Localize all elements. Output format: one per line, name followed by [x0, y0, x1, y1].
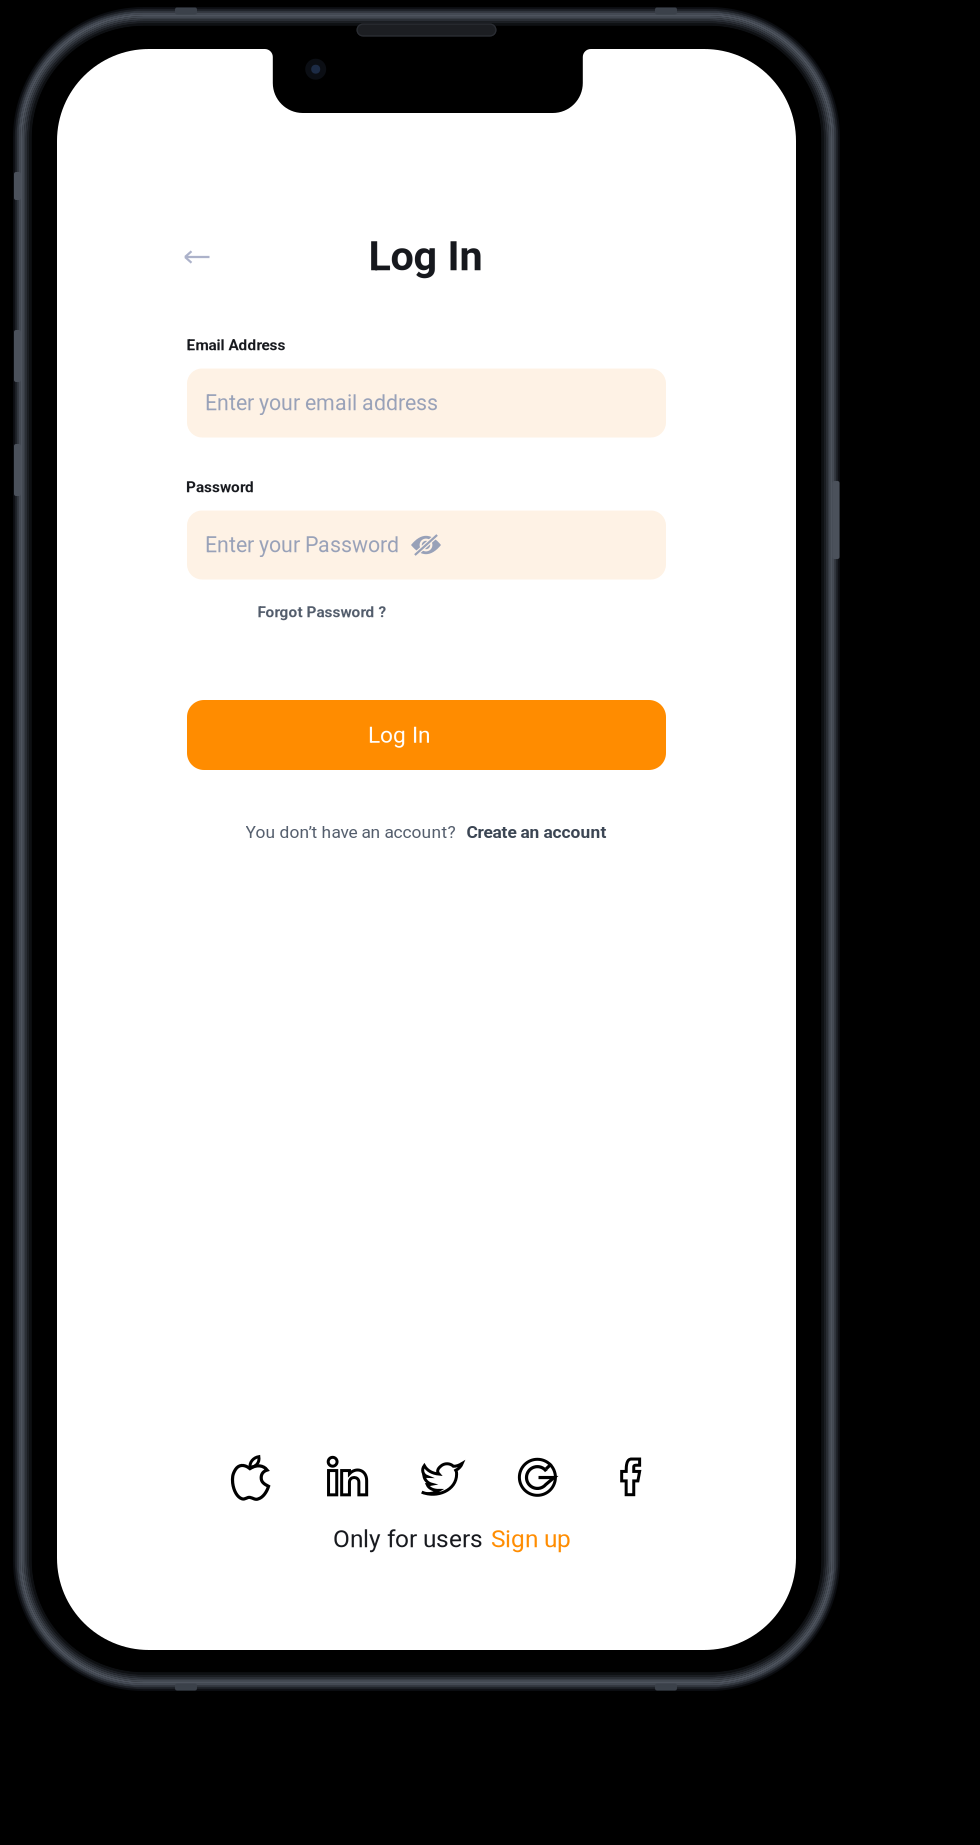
button[interactable]: Sign in with LinkedIn: [315, 1442, 380, 1509]
button[interactable]: Back: [168, 235, 225, 279]
button[interactable]: Sign in with Twitter: [409, 1448, 475, 1506]
staticText: Log In: [368, 722, 431, 748]
staticText: Password: [186, 478, 254, 496]
staticText: Forgot Password ?: [257, 603, 386, 621]
button[interactable]: Sign in with Facebook: [603, 1441, 661, 1512]
button[interactable]: Forgot Password ?: [251, 597, 392, 627]
button[interactable]: Sign in with Apple: [216, 1441, 286, 1513]
staticText: Email Address: [186, 336, 285, 354]
button[interactable]: Enter your Password: [187, 510, 666, 579]
button[interactable]: Sign in with Google: [503, 1442, 572, 1511]
staticText: You don’t have an account?: [245, 822, 455, 842]
staticText: Sign up: [491, 1525, 571, 1553]
staticText: Only for users: [333, 1525, 483, 1553]
staticText: Enter your Password: [205, 532, 399, 557]
button[interactable]: Log In: [187, 700, 666, 770]
staticText: Enter your email address: [205, 390, 438, 415]
staticText: Log In: [368, 232, 482, 280]
staticText: Create an account: [466, 822, 606, 842]
button[interactable]: Enter your email address: [187, 368, 666, 437]
button[interactable]: Sign up: [491, 1525, 571, 1553]
button[interactable]: Create an account: [466, 822, 606, 842]
